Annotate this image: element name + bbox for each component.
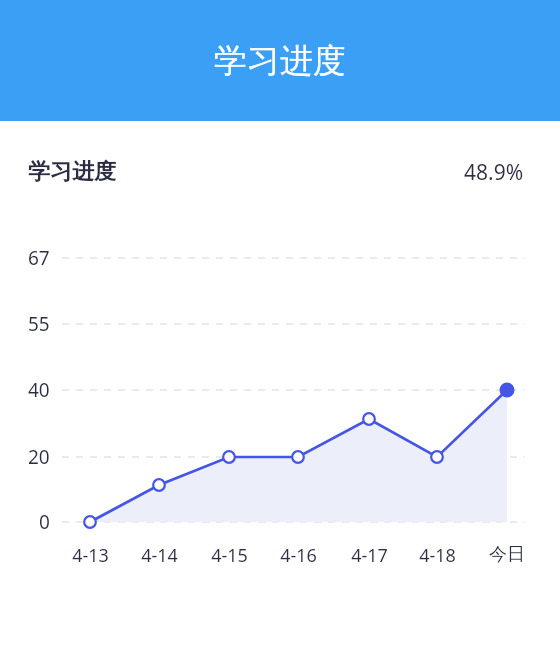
- staticText: 4-17: [351, 543, 388, 568]
- other: 学习进度折线图: [0, 0, 560, 660]
- staticText: 4-15: [211, 543, 248, 568]
- staticText: 4-13: [72, 543, 109, 568]
- staticText: 学习进度: [214, 40, 346, 82]
- staticText: 学习进度: [28, 158, 116, 186]
- staticText: 67: [28, 245, 50, 271]
- staticText: 4-18: [419, 543, 456, 568]
- staticText: 55: [28, 311, 50, 337]
- button[interactable]: 学习进度: [0, 148, 560, 196]
- staticText: 40: [28, 377, 50, 403]
- staticText: 20: [28, 444, 50, 470]
- button[interactable]: 学习进度: [0, 0, 560, 121]
- staticText: 今日: [489, 543, 525, 566]
- staticText: 0: [39, 509, 50, 535]
- staticText: 4-16: [280, 543, 317, 568]
- staticText: 4-14: [141, 543, 178, 568]
- staticText: 48.9%: [464, 158, 524, 187]
